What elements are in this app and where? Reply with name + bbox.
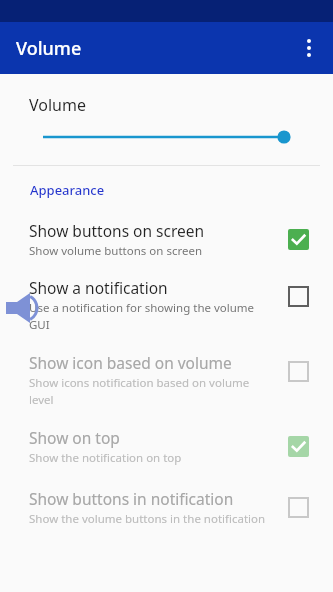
button[interactable]: Show buttons in notification	[0, 488, 333, 547]
staticText: Volume	[16, 36, 82, 61]
staticText: Show on top	[29, 427, 120, 448]
staticText: Show buttons on screen	[29, 220, 205, 241]
button[interactable]: Show a notification	[0, 275, 333, 350]
staticText: Use a notification for showing the volum…	[29, 300, 274, 332]
staticText: Show icons notification based on volume …	[29, 375, 274, 407]
button[interactable]: Show buttons on screen	[284, 225, 312, 253]
staticText: Show volume buttons on screen	[29, 243, 203, 259]
button[interactable]: Show buttons in notification	[284, 493, 312, 521]
button[interactable]: Show on top	[0, 425, 333, 488]
button[interactable]: Show icon based on volume	[284, 357, 312, 385]
button[interactable]: Show a notification	[284, 282, 312, 310]
staticText: Volume	[29, 94, 86, 116]
staticText: Show buttons in notification	[29, 488, 234, 509]
staticText: Show the notification on top	[29, 450, 182, 466]
button[interactable]: Volume	[0, 74, 333, 165]
staticText: Show icon based on volume	[29, 352, 232, 373]
staticText: Appearance	[30, 181, 105, 199]
staticText: Show a notification	[29, 277, 168, 298]
button[interactable]: Show on top	[284, 432, 312, 460]
button[interactable]: Show icon based on volume	[0, 350, 333, 425]
button[interactable]: Show buttons on screen	[0, 220, 333, 275]
button[interactable]: More options	[291, 30, 327, 66]
staticText: Show the volume buttons in the notificat…	[29, 511, 266, 527]
